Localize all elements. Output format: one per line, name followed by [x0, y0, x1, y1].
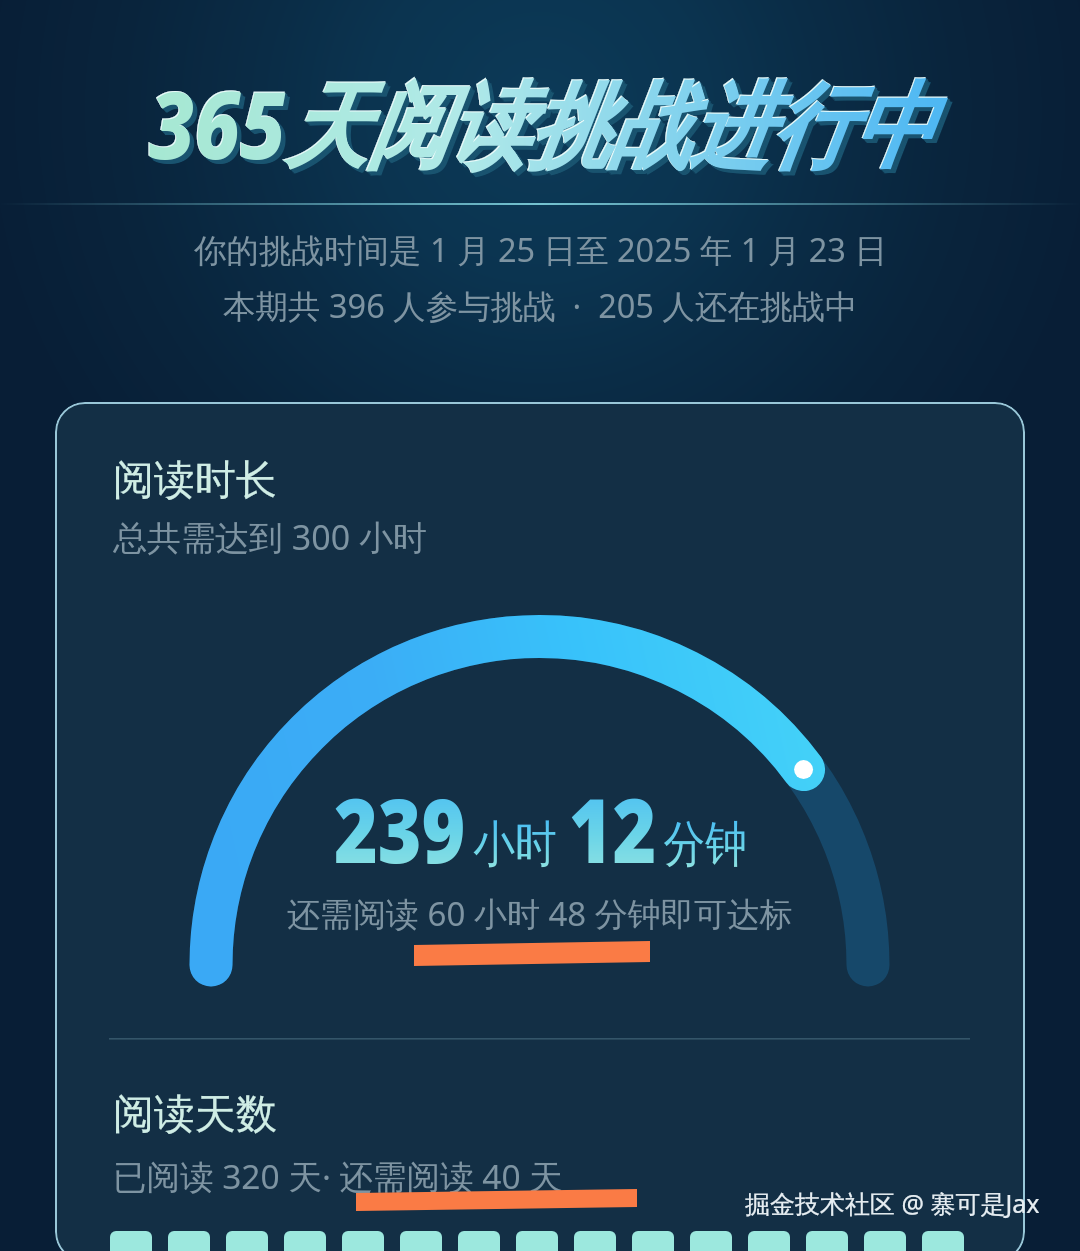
button[interactable]: Day 3 read: [226, 1231, 268, 1251]
button[interactable]: Day 13 read: [806, 1231, 848, 1251]
staticText: 365天阅读挑战进行中: [151, 61, 934, 189]
staticText: 阅读时长: [113, 455, 277, 507]
button[interactable]: Day 10 read: [632, 1231, 674, 1251]
staticText: 365天阅读挑战进行中: [152, 63, 935, 190]
staticText: 你的挑战时间是 1 月 25 日至 2025 年 1 月 23 日: [194, 227, 887, 271]
button[interactable]: Day 7 read: [458, 1231, 500, 1251]
button[interactable]: Day 2 read: [168, 1231, 210, 1251]
button[interactable]: Day 9 read: [574, 1231, 616, 1251]
staticText: 365天阅读挑战进行中: [153, 64, 936, 191]
staticText: 分钟: [664, 813, 747, 875]
staticText: 总共需达到 300 小时: [113, 514, 428, 560]
button[interactable]: Day 4 read: [284, 1231, 326, 1251]
button[interactable]: Day 15 read: [922, 1231, 964, 1251]
button[interactable]: Day 11 read: [690, 1231, 732, 1251]
button[interactable]: Day 12 read: [748, 1231, 790, 1251]
staticText: 365天阅读挑战进行中: [150, 60, 933, 188]
staticText: 365天阅读挑战进行中: [151, 60, 934, 188]
button[interactable]: Day 1 read: [110, 1231, 152, 1251]
staticText: 还需阅读 60 小时 48 分钟即可达标: [287, 891, 793, 936]
staticText: 239: [334, 768, 466, 889]
staticText: 本期共 396 人参与挑战 · 205 人还在挑战中: [223, 283, 858, 327]
staticText: 阅读天数: [113, 1089, 277, 1141]
staticText: 365天阅读挑战进行中: [153, 64, 937, 191]
staticText: 小时: [473, 813, 557, 875]
button[interactable]: 阅读时长: [55, 402, 1025, 1251]
button[interactable]: Day 8 read: [516, 1231, 558, 1251]
staticText: 365天阅读挑战进行中: [148, 58, 931, 186]
button[interactable]: Day 14 read: [864, 1231, 906, 1251]
staticText: 掘金技术社区 @ 寨可是Jax: [745, 1186, 1040, 1220]
button[interactable]: Day 5 read: [342, 1231, 384, 1251]
staticText: 12: [569, 768, 657, 889]
staticText: 已阅读 320 天· 还需阅读 40 天: [113, 1153, 563, 1199]
staticText: 365天阅读挑战进行中: [149, 59, 932, 187]
button[interactable]: Day 6 read: [400, 1231, 442, 1251]
